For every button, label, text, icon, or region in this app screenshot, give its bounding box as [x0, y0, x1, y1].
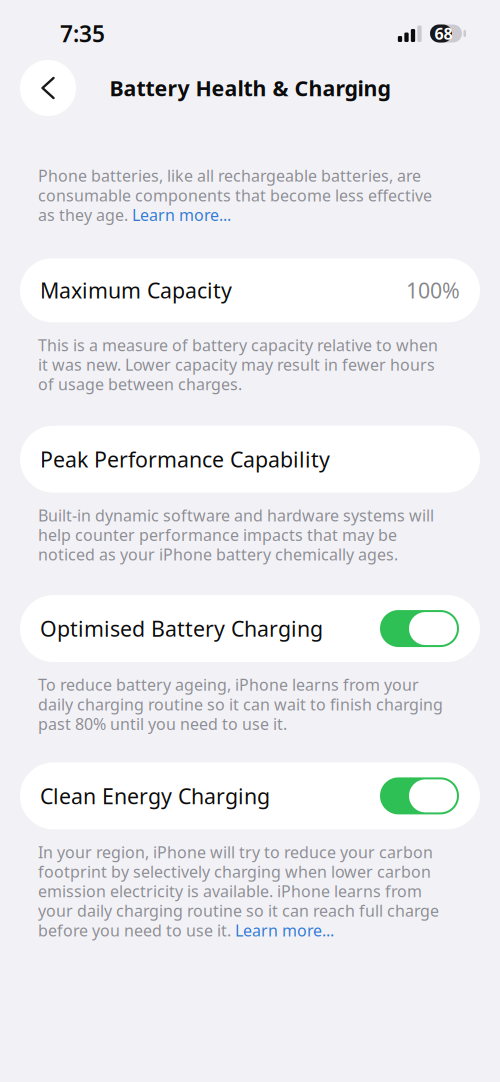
staticText: Maximum Capacity [40, 276, 232, 304]
staticText: This is a measure of battery capacity re… [38, 334, 438, 395]
button[interactable]: Maximum Capacity [20, 258, 480, 322]
staticText: Phone batteries, like all rechargeable b… [38, 165, 432, 225]
staticText: Built-in dynamic software and hardware s… [38, 505, 434, 565]
staticText: Peak Performance Capability [40, 445, 330, 473]
staticText: 7:35 [60, 18, 105, 48]
button[interactable]: Back [20, 60, 76, 116]
staticText: Clean Energy Charging [40, 782, 270, 810]
button[interactable]: Clean Energy Charging [20, 762, 480, 829]
button[interactable]: Peak Performance Capability [20, 426, 480, 493]
staticText: To reduce battery ageing, iPhone learns … [38, 674, 443, 734]
staticText: Battery Health & Charging [109, 74, 390, 102]
staticText: 68 [434, 23, 452, 44]
staticText: In your region, iPhone will try to reduc… [38, 841, 439, 941]
button[interactable]: Optimised Battery Charging [20, 595, 480, 662]
staticText: Optimised Battery Charging [40, 614, 323, 643]
staticText: 100% [406, 276, 460, 304]
